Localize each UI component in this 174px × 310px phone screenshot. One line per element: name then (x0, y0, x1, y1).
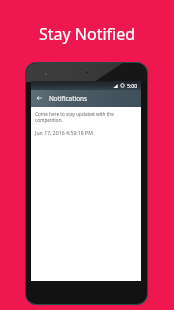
staticText: Jun 17, 2016 4:59:18 PM (35, 129, 93, 136)
staticText: Come here to stay updated with the compe… (35, 111, 122, 124)
button[interactable]: Back (35, 94, 44, 103)
staticText: Stay Notified (0, 23, 174, 45)
button[interactable]: Come here to stay updated with the compe… (35, 111, 141, 136)
staticText: 5:00 (127, 82, 138, 89)
staticText: Notifications (49, 94, 88, 103)
